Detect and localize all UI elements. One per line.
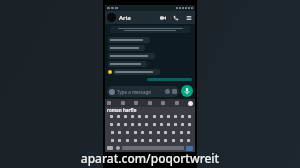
button[interactable]: Key <box>173 121 177 127</box>
button[interactable]: Key <box>166 121 170 127</box>
button[interactable] <box>108 61 147 67</box>
button[interactable]: Key <box>156 129 160 135</box>
button[interactable]: Key <box>187 121 191 127</box>
button[interactable]: Key <box>137 113 141 119</box>
button[interactable]: Contact photo <box>107 13 116 22</box>
button[interactable]: Enter <box>186 146 193 151</box>
button[interactable] <box>108 45 145 51</box>
button[interactable] <box>147 78 192 81</box>
button[interactable]: Keyboard tool <box>134 101 138 105</box>
button[interactable] <box>110 26 190 33</box>
button[interactable]: Key <box>163 137 167 143</box>
button[interactable]: Key <box>152 121 156 127</box>
button[interactable]: Key <box>180 113 184 119</box>
button[interactable]: Key <box>130 121 134 127</box>
button[interactable]: Key <box>173 113 177 119</box>
button[interactable]: Key <box>109 113 113 119</box>
button[interactable]: Key <box>109 121 113 127</box>
button[interactable]: Key <box>116 113 120 119</box>
button[interactable]: Key <box>110 137 114 143</box>
button[interactable]: Key <box>117 129 121 135</box>
button[interactable]: Key <box>133 129 137 135</box>
button[interactable]: Key <box>144 121 148 127</box>
button[interactable]: Keyboard tool <box>148 101 152 105</box>
button[interactable]: Key <box>171 137 175 143</box>
button[interactable]: Keyboard settings <box>188 101 193 106</box>
button[interactable]: Key <box>186 137 190 143</box>
button[interactable]: Key <box>166 113 170 119</box>
button[interactable]: Key <box>110 129 114 135</box>
button[interactable]: Key <box>148 137 152 143</box>
button[interactable]: Key <box>179 129 183 135</box>
button[interactable]: Key <box>125 129 129 135</box>
button[interactable]: Key <box>187 113 191 119</box>
button[interactable]: Key <box>133 137 137 143</box>
button[interactable]: Key <box>140 137 144 143</box>
button[interactable]: Key <box>163 129 167 135</box>
staticText: Aria <box>119 14 131 22</box>
staticText: aparat.com/poqortwreit <box>0 150 300 166</box>
button[interactable]: Keyboard tool <box>161 101 165 105</box>
button[interactable]: Key <box>130 113 134 119</box>
button[interactable]: Key <box>117 137 121 143</box>
button[interactable]: Key <box>137 121 141 127</box>
button[interactable] <box>113 69 160 75</box>
button[interactable]: Key <box>171 129 175 135</box>
button[interactable]: More options <box>184 13 193 22</box>
button[interactable]: Key <box>152 113 156 119</box>
button[interactable]: Key <box>116 121 120 127</box>
button[interactable]: Key <box>140 129 144 135</box>
button[interactable]: Type a message <box>107 86 179 97</box>
button[interactable]: Record voice message <box>181 85 193 97</box>
button[interactable]: Key <box>144 113 148 119</box>
button[interactable]: Key <box>156 137 160 143</box>
button[interactable]: Video call <box>158 13 167 22</box>
button[interactable]: Key <box>180 121 184 127</box>
button[interactable]: Keyboard tool <box>121 101 125 105</box>
button[interactable]: Emoji <box>116 146 120 150</box>
button[interactable]: Keyboard tool <box>175 101 179 105</box>
button[interactable]: Keyboard tool <box>107 101 111 105</box>
button[interactable]: Key <box>148 129 152 135</box>
staticText: roman harfle <box>107 107 137 112</box>
button[interactable]: Key <box>159 121 163 127</box>
button[interactable]: Key <box>186 129 190 135</box>
staticText: Type a message <box>117 89 151 95</box>
button[interactable]: Key <box>123 121 127 127</box>
button[interactable] <box>108 37 150 43</box>
button[interactable]: Key <box>123 113 127 119</box>
button[interactable]: Symbols <box>107 146 113 150</box>
button[interactable]: Key <box>179 137 183 143</box>
button[interactable]: Voice call <box>171 13 180 22</box>
button[interactable]: Key <box>159 113 163 119</box>
button[interactable] <box>108 53 155 59</box>
button[interactable]: Key <box>125 137 129 143</box>
